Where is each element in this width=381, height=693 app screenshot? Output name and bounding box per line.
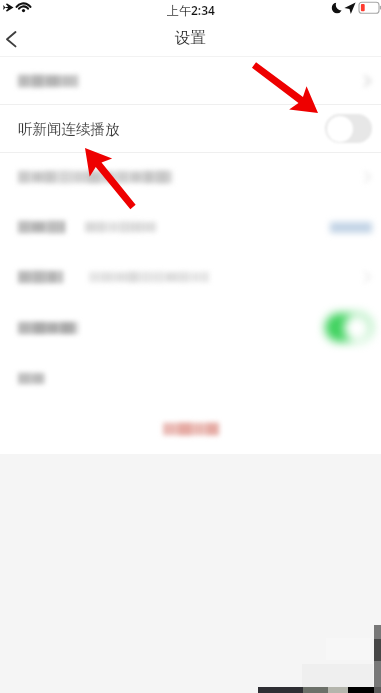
staticText: 听新闻连续播放 — [18, 120, 120, 138]
button[interactable] — [0, 403, 381, 454]
button[interactable]: Switch on — [0, 302, 381, 353]
button[interactable] — [0, 57, 381, 105]
button[interactable]: Back — [0, 20, 34, 56]
button[interactable] — [0, 201, 381, 252]
button[interactable] — [0, 252, 381, 302]
button[interactable] — [0, 153, 381, 201]
button[interactable]: Switch off — [325, 114, 372, 143]
button[interactable]: Switch on — [325, 313, 372, 342]
staticText: 上午2:34 — [167, 2, 215, 18]
staticText: 设置 — [175, 28, 206, 48]
button[interactable] — [0, 353, 381, 403]
button[interactable]: 听新闻连续播放 — [0, 105, 381, 153]
